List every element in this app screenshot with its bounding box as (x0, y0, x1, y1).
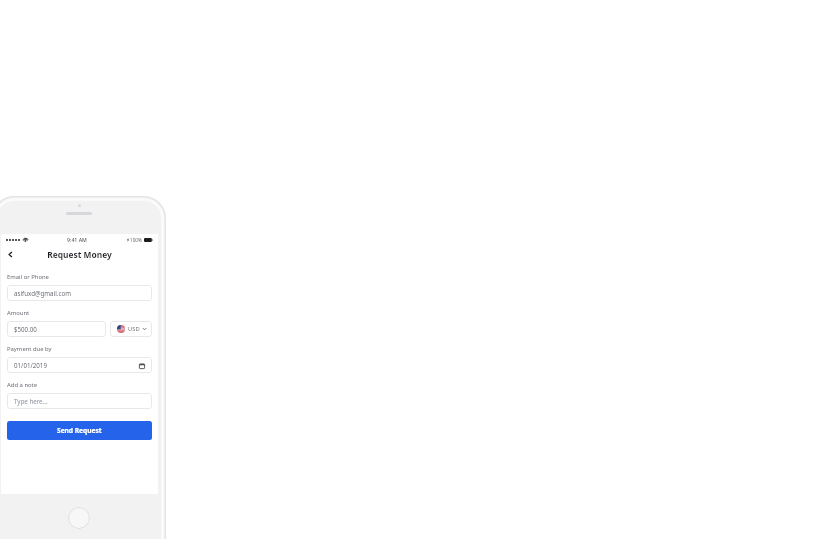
staticText: Email or Phone (7, 273, 49, 281)
button[interactable]: Type here... (7, 393, 152, 409)
staticText: Send Request (57, 426, 102, 435)
staticText: USD (128, 325, 140, 333)
button[interactable]: asifuxd@gmail.com (7, 285, 152, 301)
staticText: Request Money (47, 249, 112, 260)
button[interactable]: USD (110, 321, 152, 337)
other: Pick date (138, 362, 145, 369)
staticText: 01/01/2019 (14, 361, 47, 369)
button[interactable]: $500.00 (7, 321, 106, 337)
staticText: 9:41 AM (67, 236, 87, 243)
staticText: Type here... (14, 397, 48, 405)
staticText: 100% (130, 237, 142, 243)
button[interactable]: Send Request (7, 421, 152, 440)
staticText: Payment due by (7, 345, 52, 353)
staticText: $500.00 (14, 325, 37, 333)
button[interactable]: 01/01/2019 (7, 357, 152, 373)
staticText: Amount (7, 309, 30, 317)
staticText: asifuxd@gmail.com (14, 289, 71, 297)
staticText: Add a note (7, 381, 38, 389)
button[interactable]: Back (4, 248, 17, 261)
